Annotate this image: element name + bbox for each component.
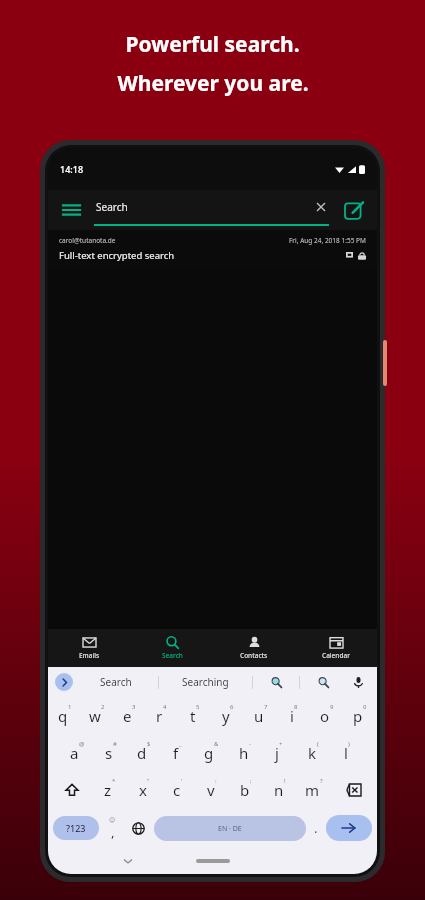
staticText: 8 bbox=[294, 703, 298, 711]
button[interactable]: Open navigation menu bbox=[56, 195, 86, 225]
button[interactable]: g bbox=[194, 734, 228, 771]
button[interactable]: t bbox=[178, 697, 211, 734]
staticText: ; bbox=[250, 777, 252, 785]
button[interactable]: y bbox=[211, 697, 244, 734]
button[interactable]: r bbox=[145, 697, 178, 734]
staticText: j bbox=[275, 743, 279, 763]
staticText: Searching bbox=[182, 675, 229, 689]
button[interactable]: ?123 bbox=[53, 816, 99, 840]
staticText: y bbox=[222, 706, 230, 726]
staticText: Search bbox=[100, 675, 132, 689]
staticText: k bbox=[308, 743, 317, 763]
staticText: @ bbox=[79, 740, 85, 748]
button[interactable]: EN · DE bbox=[154, 816, 306, 841]
staticText: ? bbox=[320, 777, 323, 785]
staticText: u bbox=[254, 706, 264, 726]
staticText: 5 bbox=[196, 703, 200, 711]
staticText: Calendar bbox=[322, 651, 350, 660]
staticText: Full-text encrypted search bbox=[59, 249, 175, 262]
staticText: - bbox=[249, 740, 251, 748]
staticText: ( bbox=[317, 740, 319, 748]
button[interactable]: e bbox=[113, 697, 145, 734]
button[interactable]: m bbox=[297, 771, 331, 808]
staticText: Powerful search. bbox=[125, 30, 300, 59]
staticText: c bbox=[173, 780, 181, 800]
button[interactable]: q bbox=[49, 697, 81, 734]
button[interactable]: Enter bbox=[326, 815, 372, 841]
button[interactable]: Clear search bbox=[313, 199, 329, 215]
button[interactable]: Compose new email bbox=[339, 195, 369, 225]
button[interactable]: b bbox=[229, 771, 263, 808]
button[interactable]: Shift bbox=[50, 771, 93, 808]
staticText: # bbox=[113, 740, 117, 748]
button[interactable]: d bbox=[127, 734, 160, 771]
staticText: & bbox=[214, 740, 219, 748]
button[interactable]: Searching bbox=[159, 667, 252, 697]
button[interactable]: w bbox=[81, 697, 113, 734]
staticText: s bbox=[105, 743, 113, 763]
button[interactable]: Calendar bbox=[295, 629, 377, 667]
button[interactable]: v bbox=[195, 771, 229, 808]
staticText: q bbox=[58, 706, 68, 726]
staticText: w bbox=[89, 706, 101, 726]
button[interactable]: k bbox=[296, 734, 330, 771]
staticText: EN · DE bbox=[218, 824, 242, 834]
staticText: r bbox=[156, 706, 163, 726]
staticText: Wherever you are. bbox=[117, 69, 309, 98]
button[interactable]: c bbox=[161, 771, 195, 808]
button[interactable]: ☺ bbox=[99, 808, 125, 848]
staticText: t bbox=[190, 706, 196, 726]
staticText: 1 bbox=[68, 703, 72, 711]
button[interactable]: o bbox=[310, 697, 343, 734]
button[interactable]: l bbox=[330, 734, 364, 771]
button[interactable]: . bbox=[306, 808, 326, 848]
staticText: . bbox=[314, 819, 318, 837]
button[interactable]: Voice input bbox=[346, 667, 370, 697]
button[interactable]: Emails bbox=[48, 629, 131, 667]
button[interactable]: Search bbox=[73, 667, 158, 697]
button[interactable]: i bbox=[277, 697, 310, 734]
staticText: Emails bbox=[79, 651, 100, 660]
staticText: v bbox=[207, 780, 215, 800]
staticText: , bbox=[111, 823, 115, 841]
button[interactable]: u bbox=[244, 697, 277, 734]
button[interactable]: z bbox=[93, 771, 127, 808]
button[interactable]: Backspace bbox=[331, 771, 375, 808]
staticText: Search bbox=[162, 651, 183, 660]
staticText: z bbox=[104, 780, 112, 800]
staticText: ☺ bbox=[109, 816, 116, 823]
button[interactable]: Change language bbox=[125, 808, 151, 848]
button[interactable]: Search bbox=[131, 629, 213, 667]
staticText: 9 bbox=[330, 703, 334, 711]
button[interactable]: f bbox=[160, 734, 194, 771]
staticText: n bbox=[274, 780, 284, 800]
staticText: b bbox=[240, 780, 250, 800]
button[interactable]: x bbox=[127, 771, 161, 808]
button[interactable]: Hide keyboard bbox=[122, 855, 134, 867]
button[interactable]: h bbox=[228, 734, 262, 771]
staticText: + bbox=[279, 740, 283, 748]
staticText: ! bbox=[284, 777, 286, 785]
button[interactable]: n bbox=[263, 771, 297, 808]
button[interactable]: Search bbox=[94, 194, 329, 226]
button[interactable]: carol@tutanota.de bbox=[48, 230, 377, 268]
staticText: ) bbox=[348, 740, 350, 748]
staticText: 3 bbox=[132, 703, 136, 711]
staticText: 14:18 bbox=[60, 163, 84, 175]
button[interactable]: s bbox=[94, 734, 127, 771]
button[interactable]: a bbox=[61, 734, 94, 771]
staticText: Contacts bbox=[240, 651, 268, 660]
staticText: $ bbox=[147, 740, 151, 748]
staticText: _ bbox=[179, 740, 182, 748]
button[interactable]: Contacts bbox=[213, 629, 295, 667]
staticText: x bbox=[139, 780, 147, 800]
button[interactable]: More suggestions bbox=[55, 673, 73, 691]
staticText: 0 bbox=[363, 703, 367, 711]
button[interactable]: Search emoji alternate bbox=[300, 667, 346, 697]
button[interactable]: j bbox=[262, 734, 296, 771]
staticText: ' bbox=[181, 777, 183, 785]
staticText: o bbox=[320, 706, 330, 726]
button[interactable]: Search emoji bbox=[253, 667, 299, 697]
staticText: a bbox=[70, 743, 79, 763]
button[interactable]: p bbox=[343, 697, 376, 734]
